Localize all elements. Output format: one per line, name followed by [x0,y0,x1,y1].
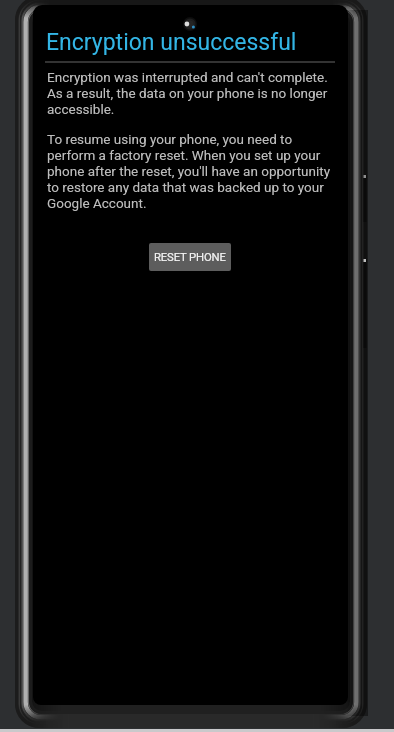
staticText: To resume using your phone, you need to … [47,132,331,212]
staticText: Encryption was interrupted and can't com… [47,70,328,118]
button[interactable]: RESET PHONE [149,243,231,271]
staticText: RESET PHONE [154,251,226,264]
staticText: Encryption unsuccessful [46,29,297,56]
other: Front camera [183,17,197,31]
